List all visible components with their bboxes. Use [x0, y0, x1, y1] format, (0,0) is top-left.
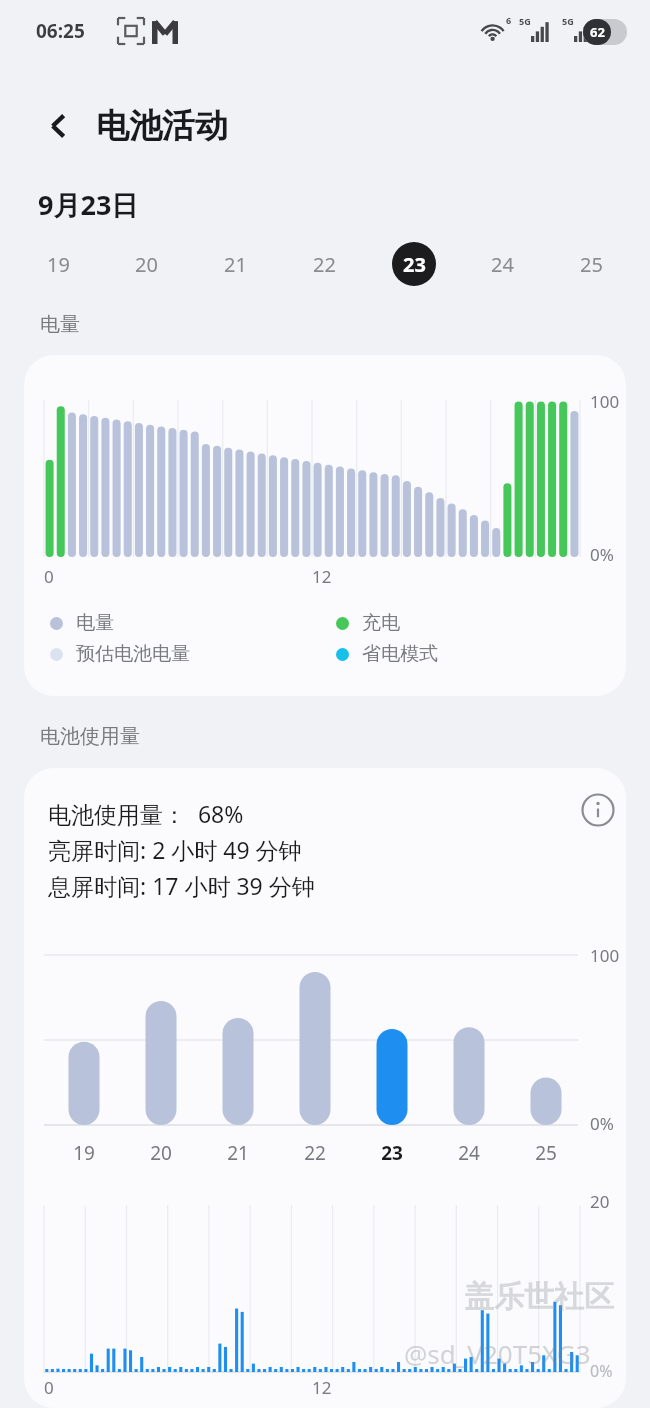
staticText: 6 — [506, 14, 512, 26]
staticText: @sd_V20T5XG3 — [404, 1336, 591, 1371]
staticText: 5G — [519, 15, 531, 27]
staticText: 盖乐世社区 — [464, 1278, 614, 1316]
staticText: 省电模式 — [362, 642, 438, 666]
staticText: 20 — [590, 1190, 610, 1213]
button[interactable]: Information — [572, 784, 624, 836]
staticText: 预估电池电量 — [76, 642, 190, 666]
staticText: 电量 — [76, 611, 114, 635]
staticText: 12 — [312, 1376, 332, 1399]
staticText: 20 — [150, 1140, 172, 1166]
staticText: 电池使用量 — [40, 724, 140, 749]
button[interactable]: 21 — [211, 240, 259, 288]
button[interactable]: 19 — [34, 240, 82, 288]
button[interactable]: 电量 — [50, 608, 114, 638]
staticText: 息屏时间: 17 小时 39 分钟 — [48, 870, 315, 901]
staticText: 19 — [47, 251, 70, 278]
staticText: 22 — [313, 251, 336, 278]
staticText: 21 — [227, 1140, 249, 1166]
staticText: 0 — [44, 1376, 54, 1399]
staticText: 电量 — [40, 312, 80, 337]
staticText: 0% — [590, 1112, 614, 1135]
staticText: 100 — [590, 390, 620, 413]
staticText: 19 — [73, 1140, 95, 1166]
staticText: 24 — [458, 1140, 480, 1166]
staticText: 06:25 — [36, 18, 85, 44]
button[interactable]: 省电模式 — [336, 639, 438, 669]
button[interactable]: 充电 — [336, 608, 400, 638]
button[interactable]: 22 — [300, 240, 348, 288]
staticText: 5G — [562, 15, 574, 27]
staticText: 24 — [491, 251, 514, 278]
staticText: 23 — [403, 251, 426, 278]
staticText: 0% — [590, 543, 614, 566]
button[interactable]: 25 — [567, 240, 615, 288]
button[interactable]: 预估电池电量 — [50, 639, 190, 669]
staticText: 62 — [590, 23, 605, 41]
staticText: 25 — [535, 1140, 557, 1166]
staticText: 100 — [590, 944, 620, 967]
staticText: 22 — [304, 1140, 326, 1166]
button[interactable]: 20 — [122, 240, 170, 288]
staticText: 0 — [44, 565, 54, 588]
staticText: 9月23日 — [38, 186, 139, 223]
staticText: 21 — [224, 251, 247, 278]
staticText: 0% — [590, 1360, 613, 1382]
staticText: 电池使用量： 68% — [48, 798, 244, 829]
button[interactable]: 电池使用量： 68% — [24, 768, 626, 1408]
staticText: 充电 — [362, 611, 400, 635]
staticText: 20 — [135, 251, 158, 278]
button[interactable]: Back — [28, 95, 90, 157]
staticText: 12 — [312, 565, 332, 588]
staticText: 25 — [580, 251, 603, 278]
button[interactable]: 100 — [24, 355, 626, 696]
button[interactable]: 23 — [390, 240, 438, 288]
staticText: 亮屏时间: 2 小时 49 分钟 — [48, 834, 302, 865]
button[interactable]: 24 — [478, 240, 526, 288]
staticText: 电池活动 — [96, 105, 228, 147]
staticText: 23 — [381, 1140, 403, 1166]
